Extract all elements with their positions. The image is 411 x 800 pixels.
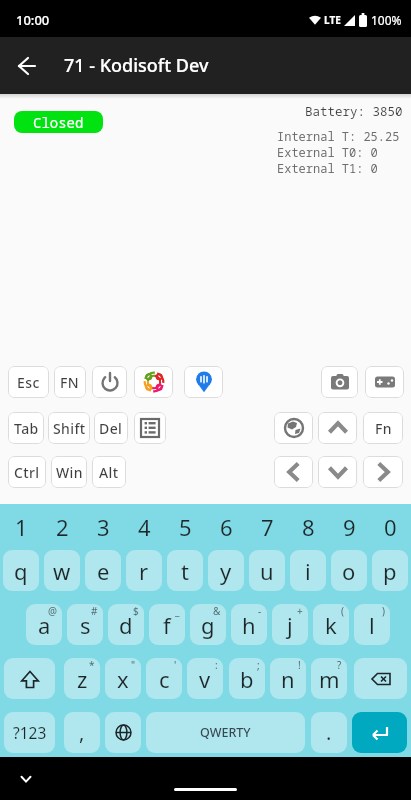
staticText: "	[131, 658, 136, 672]
button[interactable]: l	[354, 604, 390, 645]
staticText: _	[175, 604, 180, 618]
button[interactable]	[105, 712, 141, 753]
button[interactable]: Ctrl	[8, 456, 46, 488]
staticText: y	[220, 556, 232, 586]
button[interactable]: 0	[370, 504, 411, 550]
button[interactable]: 4	[124, 504, 165, 550]
button[interactable]	[352, 712, 407, 753]
staticText: u	[260, 556, 274, 586]
button[interactable]: k	[313, 604, 349, 645]
button[interactable]: Alt	[92, 456, 126, 488]
staticText: External T1: 0	[277, 160, 378, 176]
button[interactable]: 8	[288, 504, 329, 550]
button[interactable]: Shift	[48, 412, 90, 444]
staticText: 6	[220, 512, 233, 542]
staticText: LTE	[324, 13, 341, 27]
staticText: :	[215, 658, 218, 672]
button[interactable]: 6	[206, 504, 247, 550]
button[interactable]: w	[44, 550, 80, 591]
button[interactable]: z	[64, 658, 100, 699]
button[interactable]: m	[311, 658, 347, 699]
button[interactable]	[318, 456, 357, 488]
button[interactable]: g	[190, 604, 226, 645]
button[interactable]: Del	[94, 412, 128, 444]
button[interactable]: .	[311, 712, 347, 753]
button[interactable]	[354, 658, 407, 699]
button[interactable]: e	[85, 550, 121, 591]
staticText: x	[117, 664, 129, 694]
button[interactable]	[92, 366, 127, 398]
button[interactable]: y	[208, 550, 244, 591]
button[interactable]	[184, 366, 223, 398]
button[interactable]: 7	[247, 504, 288, 550]
button[interactable]: d	[108, 604, 144, 645]
staticText: Closed	[33, 113, 84, 132]
staticText: Ctrl	[14, 463, 40, 482]
button[interactable]: f	[149, 604, 185, 645]
staticText: i	[305, 556, 311, 586]
button[interactable]	[321, 366, 358, 398]
button[interactable]	[134, 412, 166, 444]
button[interactable]: 1	[0, 504, 42, 550]
button[interactable]: 9	[329, 504, 370, 550]
button[interactable]: u	[249, 550, 285, 591]
staticText: r	[139, 556, 149, 586]
button[interactable]	[11, 764, 40, 793]
staticText: (	[341, 604, 344, 618]
staticText: h	[242, 610, 256, 640]
button[interactable]: r	[126, 550, 162, 591]
button[interactable]: o	[331, 550, 367, 591]
staticText: t	[181, 556, 189, 586]
staticText: $	[133, 604, 139, 618]
button[interactable]	[134, 366, 173, 398]
button[interactable]: p	[372, 550, 408, 591]
staticText: 3	[97, 512, 110, 542]
button[interactable]: q	[3, 550, 39, 591]
staticText: &	[213, 604, 221, 618]
button[interactable]: ,	[64, 712, 100, 753]
staticText: +	[297, 604, 303, 618]
button[interactable]: c	[146, 658, 182, 699]
staticText: 10:00	[16, 11, 50, 29]
button[interactable]: Closed	[14, 111, 103, 133]
button[interactable]: b	[229, 658, 265, 699]
button[interactable]: v	[187, 658, 223, 699]
staticText: q	[14, 556, 28, 586]
button[interactable]: s	[67, 604, 103, 645]
button[interactable]: h	[231, 604, 267, 645]
button[interactable]	[365, 366, 404, 398]
button[interactable]: ?123	[4, 712, 55, 753]
staticText: 8	[302, 512, 315, 542]
button[interactable]	[4, 658, 55, 699]
button[interactable]: a	[26, 604, 62, 645]
staticText: Del	[99, 419, 123, 438]
staticText: .	[326, 719, 332, 746]
staticText: Esc	[17, 373, 40, 392]
button[interactable]: i	[290, 550, 326, 591]
button[interactable]: Win	[51, 456, 87, 488]
button[interactable]: 5	[165, 504, 206, 550]
button[interactable]: Esc	[8, 366, 49, 398]
staticText: 100%	[371, 12, 402, 28]
button[interactable]: 3	[83, 504, 124, 550]
button[interactable]: 2	[42, 504, 83, 550]
button[interactable]: FN	[54, 366, 86, 398]
button[interactable]	[318, 412, 357, 444]
staticText: e	[97, 556, 110, 586]
staticText: Tab	[14, 419, 39, 438]
button[interactable]: QWERTY	[146, 712, 305, 753]
button[interactable]: Tab	[8, 412, 44, 444]
button[interactable]	[274, 412, 313, 444]
button[interactable]: Fn	[363, 412, 403, 444]
button[interactable]	[363, 456, 403, 488]
staticText: ?123	[13, 722, 47, 743]
button[interactable]	[274, 456, 313, 488]
button[interactable]: n	[270, 658, 306, 699]
button[interactable]: t	[167, 550, 203, 591]
button[interactable]: x	[105, 658, 141, 699]
staticText: 71 - Kodisoft Dev	[64, 53, 209, 78]
button[interactable]	[8, 47, 46, 85]
staticText: External T0: 0	[277, 144, 378, 160]
staticText: 7	[261, 512, 274, 542]
button[interactable]: j	[272, 604, 308, 645]
